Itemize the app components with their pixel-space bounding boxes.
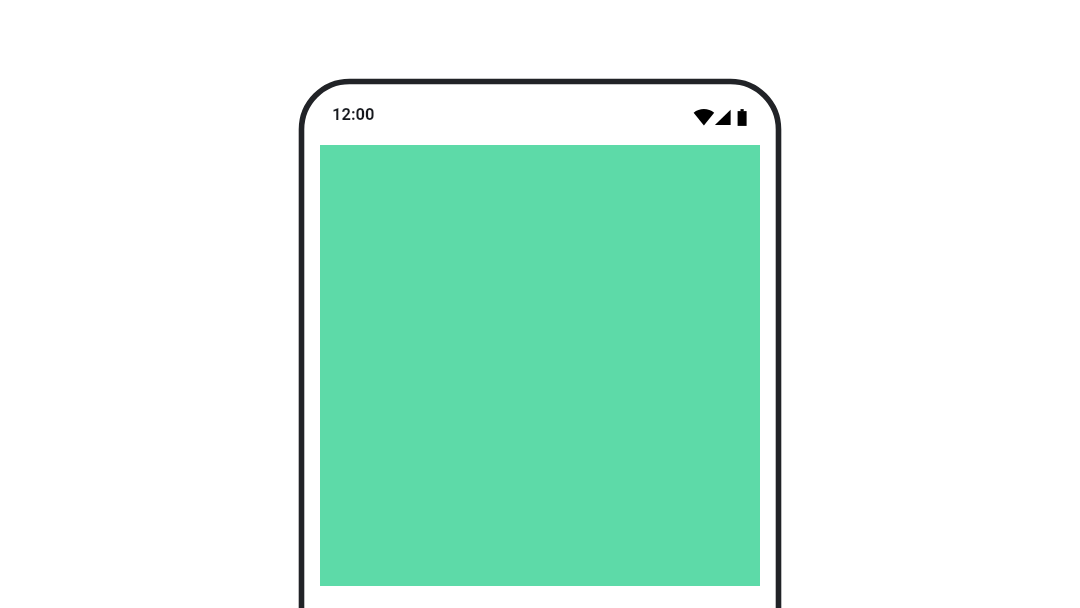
other: Wi-Fi, cellular signal and battery statu… xyxy=(694,109,747,126)
staticText: 12:00 xyxy=(332,105,375,124)
